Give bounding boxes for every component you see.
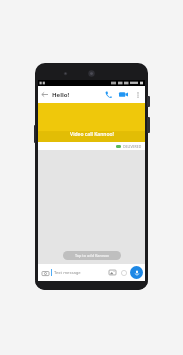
staticText: Hello! [52, 91, 70, 99]
staticText: Tap to add Kannoo [75, 253, 109, 258]
staticText: Text message [54, 270, 81, 276]
button[interactable]: Emoji [118, 267, 129, 278]
button[interactable]: Voice call [101, 87, 116, 102]
button[interactable]: Insert image [107, 267, 118, 278]
button[interactable]: Video call [116, 87, 131, 102]
button[interactable]: More options [131, 88, 144, 101]
staticText: DELIVERED [123, 144, 142, 149]
button[interactable]: Back [38, 88, 51, 101]
staticText: Video call Kannoo! [70, 131, 114, 138]
button[interactable]: Text message [54, 264, 107, 281]
button[interactable]: Tap to add Kannoo [63, 251, 121, 260]
button[interactable]: Video call Kannoo! [38, 103, 145, 142]
button[interactable]: Camera [40, 268, 50, 278]
button[interactable]: Voice input [130, 266, 143, 279]
